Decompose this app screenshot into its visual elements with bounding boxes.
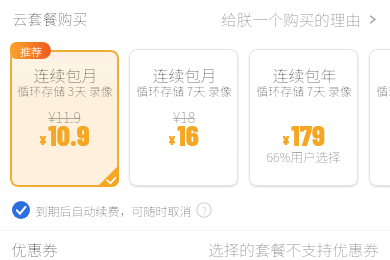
staticText: 循环存储 7天 录像: [136, 82, 232, 99]
staticText: ¥11.9: [48, 107, 81, 127]
staticText: ¥: [168, 131, 176, 148]
staticText: 循环存储 7天 录像: [376, 82, 390, 99]
staticText: 优惠券: [11, 238, 58, 260]
staticText: 云套餐购买: [12, 8, 88, 30]
button[interactable]: 连续包年: [249, 49, 358, 186]
button[interactable]: 连续包月: [10, 42, 119, 187]
button[interactable]: 连续包年: [369, 49, 390, 186]
button[interactable]: 连续包月: [129, 49, 238, 186]
staticText: ¥: [39, 131, 47, 148]
staticText: 66%用户选择: [266, 147, 341, 165]
staticText: 179: [291, 117, 325, 152]
staticText: 循环存储 3天 录像: [17, 82, 113, 99]
staticText: 连续包月: [33, 63, 98, 86]
staticText: ¥18: [173, 107, 195, 127]
staticText: 到期后自动续费，可随时取消: [35, 202, 192, 219]
staticText: 循环存储 7天 录像: [256, 82, 352, 99]
button[interactable]: Help: [196, 202, 212, 218]
staticText: 10.9: [48, 117, 90, 152]
button[interactable]: 优惠券: [11, 238, 58, 260]
staticText: 选择的套餐不支持优惠券: [208, 238, 379, 260]
staticText: 推荐: [20, 43, 42, 59]
button[interactable]: 到期后自动续费，可随时取消: [12, 201, 212, 219]
staticText: ?: [202, 203, 207, 217]
staticText: 16: [177, 117, 199, 152]
staticText: ¥: [282, 131, 290, 148]
staticText: 给朕一个购买的理由: [221, 8, 361, 30]
staticText: 连续包月: [152, 63, 217, 86]
staticText: 连续包年: [272, 63, 337, 86]
button[interactable]: 给朕一个购买的理由: [221, 8, 378, 30]
